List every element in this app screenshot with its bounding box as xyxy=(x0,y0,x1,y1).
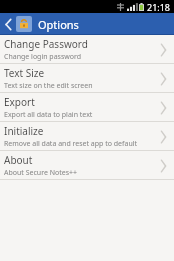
staticText: Options xyxy=(38,17,79,32)
button[interactable]: Change Password xyxy=(0,35,174,64)
staticText: Change login password xyxy=(4,52,82,62)
button[interactable]: About xyxy=(0,151,174,180)
staticText: Initialize xyxy=(4,124,44,138)
staticText: Text size on the edit screen xyxy=(4,81,93,91)
staticText: Text Size xyxy=(4,66,45,80)
staticText: About Secure Notes++ xyxy=(4,168,78,178)
staticText: 21:18 xyxy=(147,1,171,13)
staticText: Remove all data and reset app to default xyxy=(4,139,138,149)
button[interactable]: Back xyxy=(0,13,16,35)
button[interactable]: Initialize xyxy=(0,122,174,151)
staticText: Change Password xyxy=(4,37,88,51)
staticText: About xyxy=(4,153,33,167)
button[interactable]: Export xyxy=(0,93,174,122)
staticText: Export xyxy=(4,95,35,109)
staticText: Export all data to plain text xyxy=(4,110,93,120)
button[interactable]: Text Size xyxy=(0,64,174,93)
